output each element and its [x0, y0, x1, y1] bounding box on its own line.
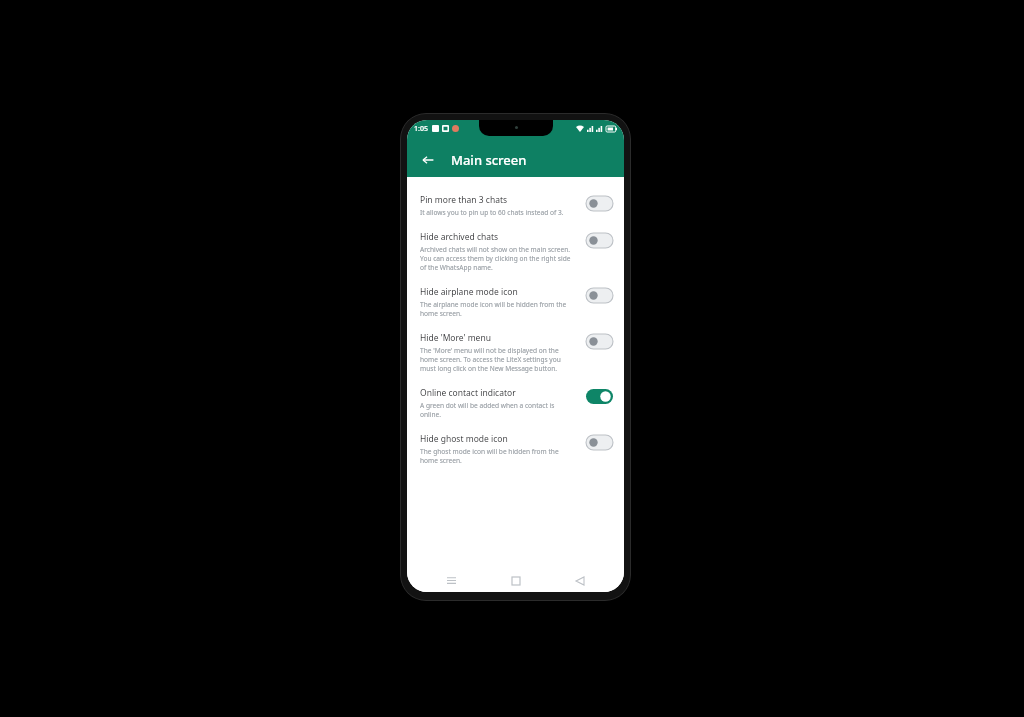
button[interactable]: Pin more than 3 chats	[407, 187, 624, 224]
button[interactable]: Hide archived chats	[407, 224, 624, 279]
button[interactable]: Pin more than 3 chats toggle	[585, 195, 614, 211]
button[interactable]: Hide 'More' menu	[407, 325, 624, 380]
button[interactable]: Online contact indicator toggle	[585, 388, 614, 404]
staticText: 1:05	[414, 124, 428, 134]
button[interactable]: Hide ghost mode icon	[407, 426, 624, 472]
staticText: A green dot will be added when a contact…	[420, 401, 577, 419]
staticText: The 'More' menu will not be displayed on…	[420, 346, 577, 373]
staticText: The ghost mode icon will be hidden from …	[420, 447, 577, 465]
button[interactable]: Recent apps	[431, 570, 471, 592]
button[interactable]: Back	[560, 570, 600, 592]
staticText: Hide archived chats	[420, 231, 499, 243]
staticText: The airplane mode icon will be hidden fr…	[420, 300, 577, 318]
button[interactable]: Home	[496, 570, 536, 592]
staticText: Archived chats will not show on the main…	[420, 245, 577, 272]
staticText: Main screen	[451, 151, 527, 169]
staticText: Hide 'More' menu	[420, 332, 491, 344]
staticText: Pin more than 3 chats	[420, 194, 508, 206]
button[interactable]: Online contact indicator	[407, 380, 624, 426]
button[interactable]: Hide ghost mode icon toggle	[585, 434, 614, 450]
staticText: Online contact indicator	[420, 387, 516, 399]
button[interactable]: Hide archived chats toggle	[585, 232, 614, 248]
button[interactable]: Hide airplane mode icon toggle	[585, 287, 614, 303]
staticText: Hide ghost mode icon	[420, 433, 508, 445]
button[interactable]: Hide airplane mode icon	[407, 279, 624, 325]
staticText: Hide airplane mode icon	[420, 286, 518, 298]
staticText: It allows you to pin up to 60 chats inst…	[420, 208, 564, 217]
button[interactable]: Back	[415, 147, 441, 173]
button[interactable]: Hide 'More' menu toggle	[585, 333, 614, 349]
